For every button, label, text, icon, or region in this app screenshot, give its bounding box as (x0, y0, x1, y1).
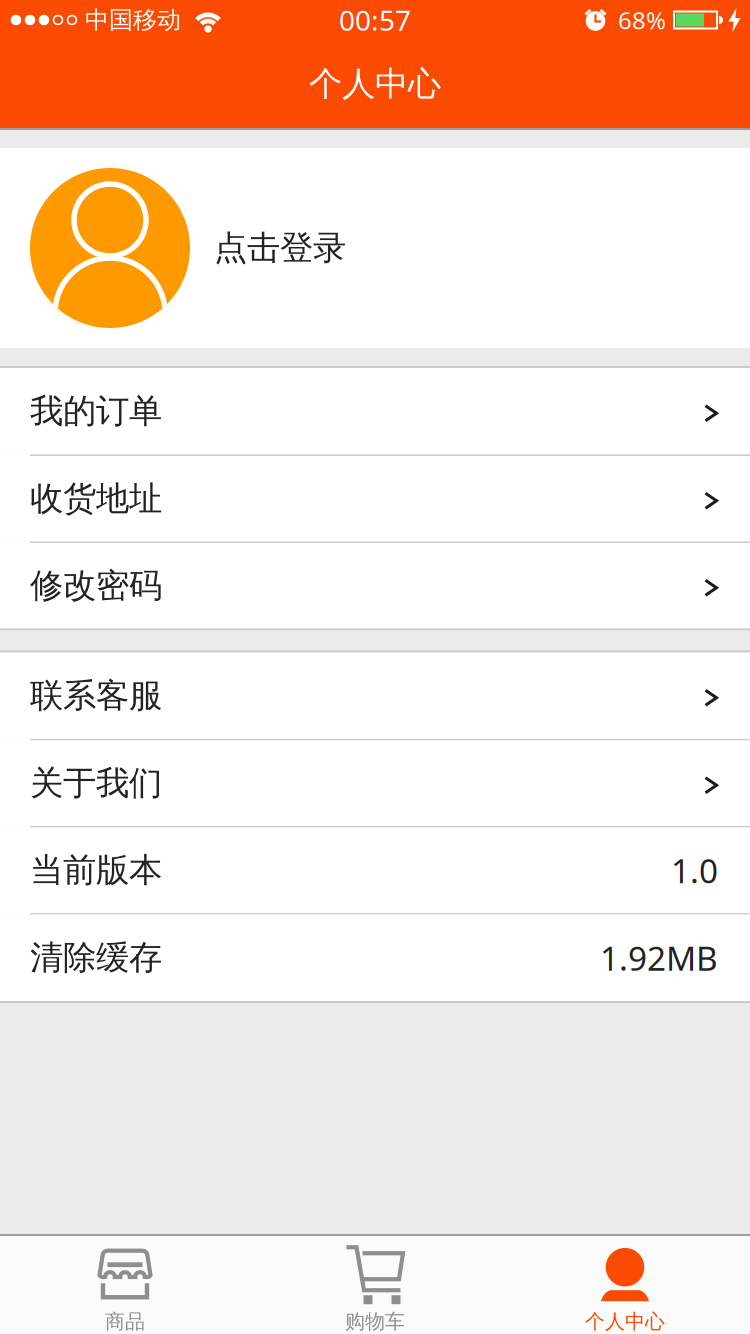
staticText: 1.0 (671, 848, 718, 892)
staticText: 个人中心 (309, 63, 441, 104)
staticText: 修改密码 (30, 565, 162, 606)
button[interactable]: 清除缓存 (0, 914, 750, 1001)
button[interactable]: 我的订单 (0, 368, 750, 454)
staticText: 当前版本 (30, 850, 162, 891)
button[interactable]: 联系客服 (0, 652, 750, 739)
staticText: 68% (618, 4, 666, 36)
staticText: 关于我们 (30, 763, 162, 804)
button[interactable]: 修改密码 (0, 543, 750, 628)
staticText: 清除缓存 (30, 937, 162, 978)
staticText: 商品 (105, 1309, 145, 1334)
button[interactable]: 关于我们 (0, 740, 750, 826)
button[interactable]: 购物车 (250, 1236, 500, 1334)
staticText: 点击登录 (214, 227, 346, 268)
staticText: 中国移动 (85, 5, 181, 35)
staticText: 个人中心 (585, 1309, 665, 1334)
staticText: 1.92MB (600, 936, 718, 980)
button[interactable]: 个人中心 (500, 1236, 750, 1334)
staticText: 收货地址 (30, 478, 162, 519)
staticText: 联系客服 (30, 675, 162, 716)
button[interactable]: 商品 (0, 1236, 250, 1334)
staticText: 00:57 (339, 1, 411, 39)
button[interactable]: 点击登录 (0, 148, 750, 348)
button[interactable]: 收货地址 (0, 456, 750, 541)
button[interactable]: 当前版本 (0, 827, 750, 913)
staticText: 购物车 (345, 1309, 405, 1334)
staticText: 我的订单 (30, 391, 162, 432)
